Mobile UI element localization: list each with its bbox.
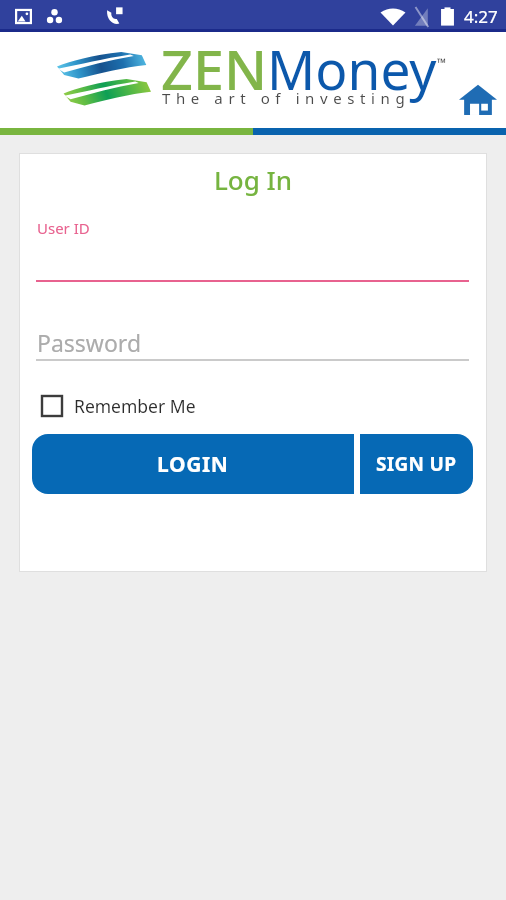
- button[interactable]: SIGN UP: [360, 434, 473, 494]
- staticText: The art of investing: [162, 88, 411, 108]
- button[interactable]: Home: [456, 77, 500, 121]
- staticText: Password: [37, 327, 142, 358]
- staticText: LOGIN: [157, 450, 229, 479]
- button[interactable]: Remember Me: [41, 394, 196, 418]
- staticText: ZEN: [161, 31, 267, 106]
- staticText: Log In: [19, 162, 487, 197]
- staticText: Money: [267, 31, 437, 106]
- staticText: Remember Me: [74, 394, 196, 418]
- staticText: SIGN UP: [376, 451, 457, 477]
- staticText: 4:27: [464, 5, 498, 28]
- staticText: ™: [437, 54, 447, 70]
- button[interactable]: LOGIN: [32, 434, 354, 494]
- staticText: User ID: [37, 218, 90, 238]
